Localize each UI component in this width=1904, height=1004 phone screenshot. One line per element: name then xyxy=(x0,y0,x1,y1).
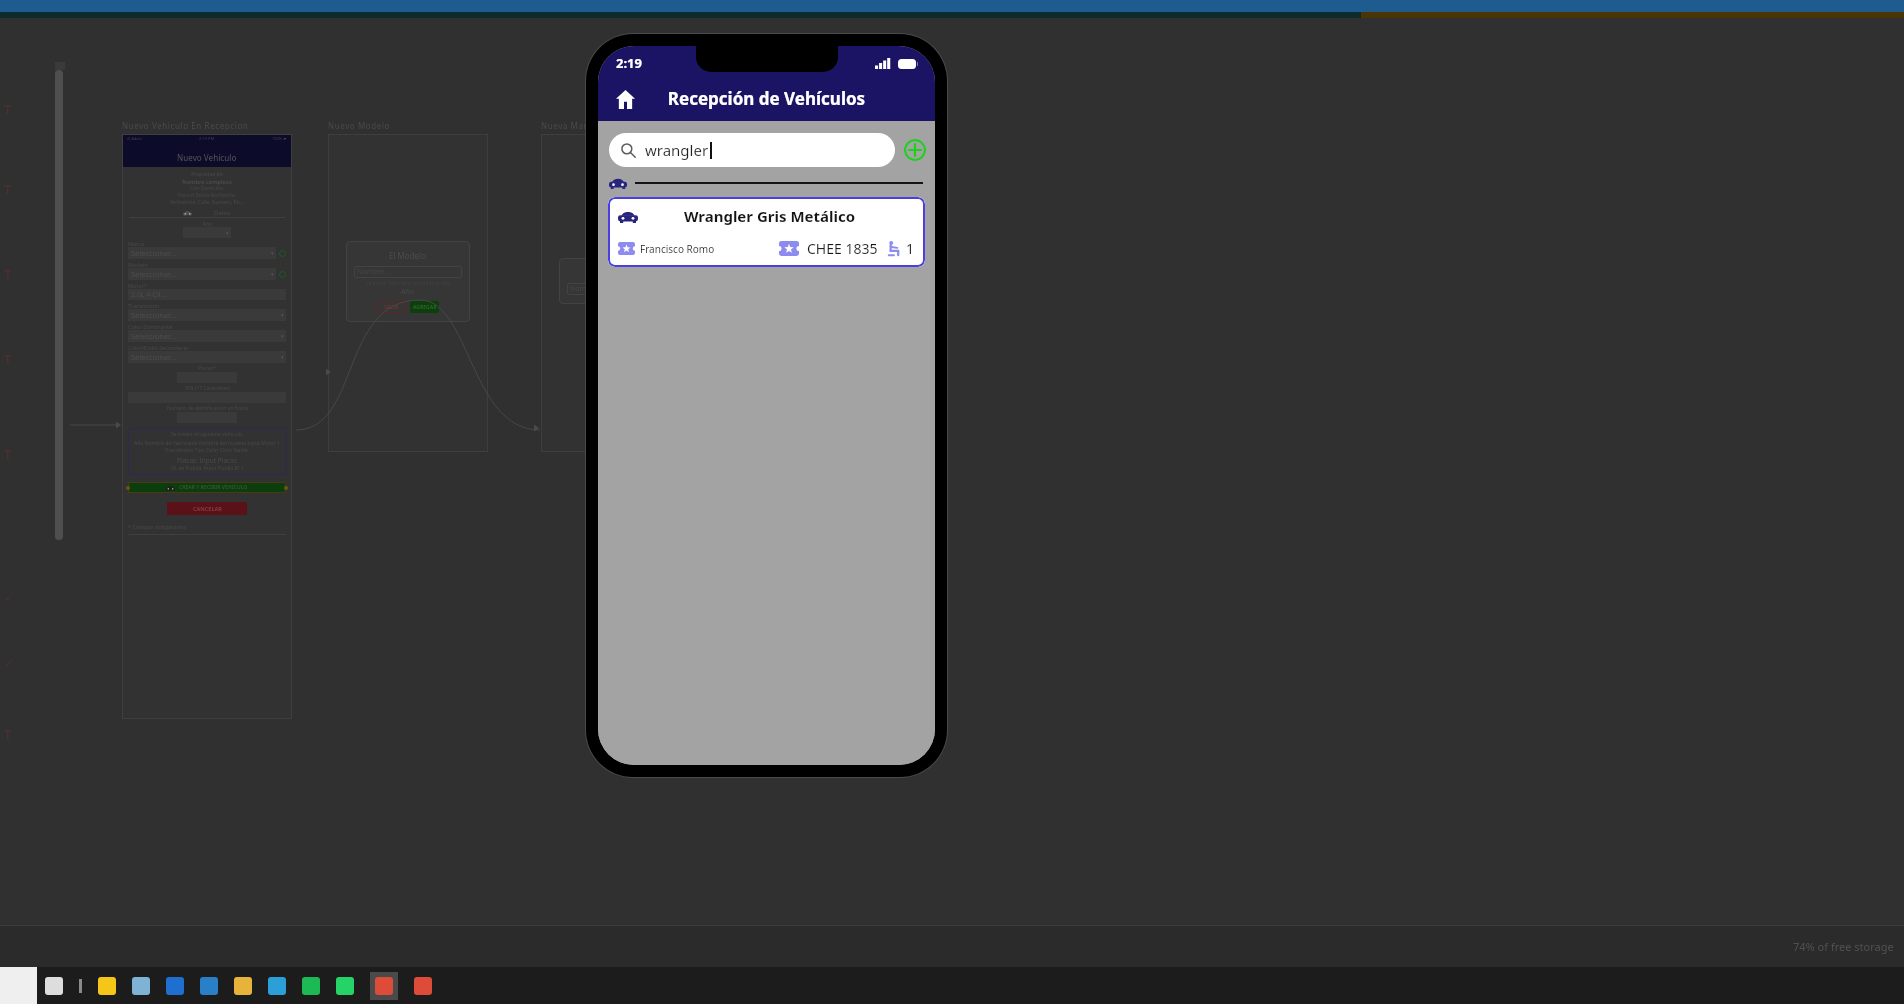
staticText: CHEE 1835 xyxy=(807,239,878,258)
button[interactable]: Wrangler Gris Metálico xyxy=(608,197,925,267)
staticText: Nombre... xyxy=(357,267,390,277)
staticText: 2:19 PM xyxy=(199,136,215,141)
staticText: T xyxy=(4,725,12,743)
staticText: 74% of free storage xyxy=(1793,939,1894,954)
staticText: T xyxy=(4,180,12,198)
staticText: Nuevo Vehiculo En Recepcion xyxy=(122,120,249,131)
staticText: Para el Domicilio/Flotilla: xyxy=(178,192,236,199)
staticText: CANCELAR xyxy=(193,505,222,512)
staticText: ▾ xyxy=(271,271,274,277)
staticText: Nombre... xyxy=(570,284,603,294)
button[interactable]: Agregar vehículo xyxy=(904,139,926,161)
staticText: T xyxy=(4,100,12,118)
staticText: Se creara el siguiente vehiculo: xyxy=(171,431,244,438)
staticText: Transmision xyxy=(128,302,160,309)
staticText: Año xyxy=(401,287,415,297)
staticText: Wrangler Gris Metálico xyxy=(638,206,901,226)
staticText: Propiedad de: xyxy=(191,171,224,178)
staticText: ✓ xyxy=(4,590,15,605)
staticText: 2.0L 4-Cil... xyxy=(131,290,167,300)
staticText: Marca xyxy=(128,240,144,247)
staticText: 100% ▰ xyxy=(272,136,287,141)
staticText: Seleccionar... xyxy=(131,248,176,258)
staticText: * Campos obligatorios xyxy=(128,523,186,530)
staticText: Id. de Flotilla: Input Flotilla ID 1 xyxy=(171,465,244,472)
staticText: Seleccionar... xyxy=(131,352,176,362)
staticText: Modelo xyxy=(128,261,148,268)
staticText: Recepción de Vehículos xyxy=(644,87,889,110)
staticText: Placas* xyxy=(198,365,216,372)
staticText: ▾ xyxy=(226,230,229,236)
button[interactable]: wrangler xyxy=(609,133,895,167)
button[interactable]: Inicio xyxy=(606,80,644,118)
staticText: Seleccionar... xyxy=(131,269,176,279)
staticText: Datos xyxy=(214,209,231,217)
staticText: ıll Adalo xyxy=(127,136,142,141)
staticText: Nombre completo xyxy=(182,178,232,185)
staticText: Numero de identificacion en flotila xyxy=(167,405,248,412)
staticText: Nuevo Modelo xyxy=(328,120,390,131)
staticText: CREAR Y RECIBIR VEHICULO xyxy=(179,484,248,491)
staticText: ▾ xyxy=(281,354,284,360)
staticText: T xyxy=(4,350,12,368)
staticText: ✓ xyxy=(4,655,15,670)
staticText: 1 xyxy=(906,239,915,258)
staticText: SALIR xyxy=(384,304,399,311)
staticText: Placas: Input Placas xyxy=(177,456,237,465)
staticText: wrangler xyxy=(645,140,709,160)
staticText: Francisco Romo xyxy=(640,242,715,256)
staticText: AGREGAR xyxy=(413,304,437,311)
staticText: Seleccionar... xyxy=(131,310,176,320)
staticText: T xyxy=(4,445,12,463)
staticText: Año xyxy=(202,220,213,227)
staticText: Color/Estilo Secundario xyxy=(128,344,189,351)
staticText: T xyxy=(4,265,12,283)
staticText: 2:19 xyxy=(616,54,642,72)
staticText: Seleccionar... xyxy=(131,331,176,341)
staticText: Año Nombre del fabricante Nombre del mod… xyxy=(131,440,283,454)
staticText: Con Domicilio: xyxy=(190,185,224,192)
staticText: Motor* xyxy=(128,282,147,289)
staticText: ▾ xyxy=(281,333,284,339)
staticText: Color Dominante xyxy=(128,323,173,330)
staticText: Nuevo Vehículo xyxy=(177,152,237,163)
staticText: VIN (17 Caracteres) xyxy=(185,385,230,392)
staticText: El Modelo xyxy=(389,250,427,261)
staticText: ▾ xyxy=(271,250,274,256)
staticText: ▾ xyxy=(281,312,284,318)
staticText: Nueva Mar xyxy=(541,120,588,131)
staticText: Referencia: Calle, Numero, Etc... xyxy=(170,199,245,206)
